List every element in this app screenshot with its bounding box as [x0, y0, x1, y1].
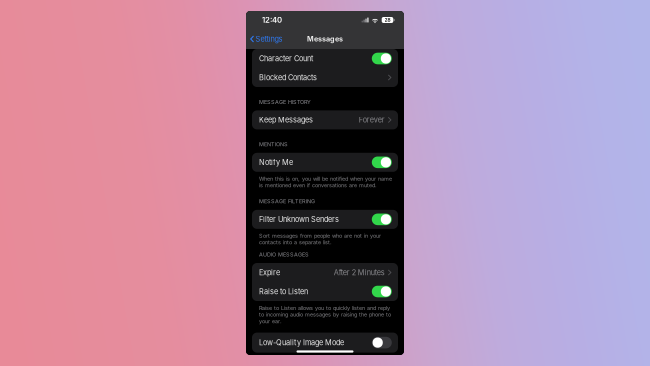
button[interactable]: Filter Unknown Senders: [252, 210, 398, 229]
button[interactable]: Blocked Contacts: [252, 68, 398, 87]
staticText: Forever: [359, 115, 385, 124]
staticText: Low-Quality Image Mode: [259, 338, 344, 347]
staticText: Expire: [259, 268, 280, 277]
button[interactable]: Notify Me: [252, 153, 398, 172]
staticText: Settings: [255, 35, 282, 43]
staticText: After 2 Minutes: [334, 268, 385, 277]
staticText: Blocked Contacts: [259, 73, 317, 82]
staticText: 12:40: [262, 15, 282, 25]
staticText: AUDIO MESSAGES: [259, 251, 309, 258]
staticText: Filter Unknown Senders: [259, 215, 339, 224]
staticText: Character Count: [259, 54, 313, 63]
button[interactable]: Low-Quality Image Mode: [252, 333, 398, 352]
staticText: MENTIONS: [259, 141, 288, 148]
staticText: MESSAGE HISTORY: [259, 99, 311, 105]
staticText: Notify Me: [259, 158, 293, 167]
staticText: Sort messages from people who are not in…: [259, 232, 381, 246]
staticText: When this is on, you will be notified wh…: [259, 175, 392, 189]
staticText: Raise to Listen: [259, 287, 308, 296]
button[interactable]: Expire: [252, 263, 398, 282]
button[interactable]: Raise to Listen: [252, 282, 398, 301]
button[interactable]: Character Count: [252, 49, 398, 68]
staticText: Messages: [307, 35, 343, 43]
staticText: 28: [384, 17, 390, 23]
staticText: Keep Messages: [259, 115, 313, 124]
staticText: MESSAGE FILTERING: [259, 198, 315, 205]
staticText: Raise to Listen allows you to quickly li…: [259, 305, 391, 324]
button[interactable]: Settings: [246, 33, 282, 45]
button[interactable]: Keep Messages: [252, 110, 398, 129]
